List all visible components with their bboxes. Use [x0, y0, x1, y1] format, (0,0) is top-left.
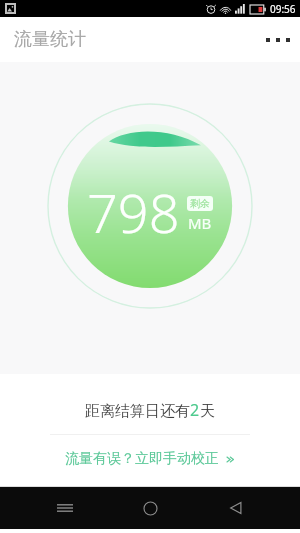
button[interactable]: Recent apps [44, 487, 86, 529]
staticText: 距离结算日还有 [85, 402, 190, 421]
staticText: 流量统计 [14, 28, 86, 51]
staticText: 798 [87, 175, 180, 249]
button[interactable]: More options [256, 18, 300, 62]
staticText: 流量有误？立即手动校正 [65, 450, 219, 468]
staticText: 2 [190, 399, 200, 421]
button[interactable]: 流量有误？立即手动校正 [53, 446, 248, 472]
staticText: 天 [200, 402, 215, 421]
staticText: MB [188, 213, 212, 233]
button[interactable]: Home [129, 487, 171, 529]
staticText: 09:56 [270, 2, 296, 16]
staticText: 剩余 [190, 197, 210, 210]
button[interactable]: Back [215, 487, 257, 529]
